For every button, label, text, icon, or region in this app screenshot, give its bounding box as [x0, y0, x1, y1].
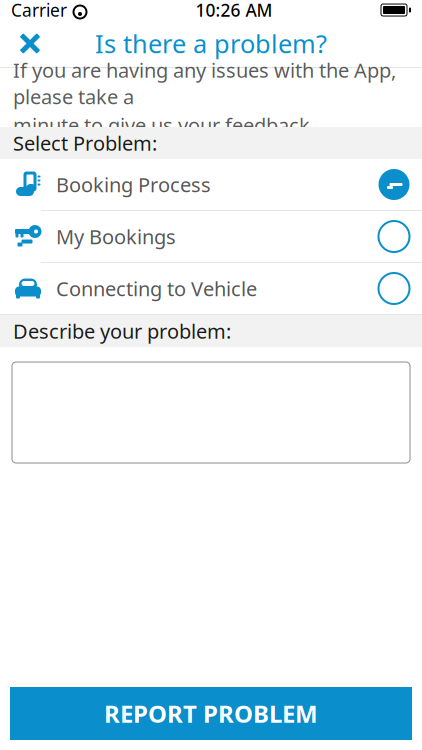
staticText: minute to give us your feedback.: [13, 112, 315, 138]
button[interactable]: REPORT PROBLEM: [10, 687, 412, 740]
staticText: Carrier: [11, 0, 67, 21]
staticText: Booking Process: [56, 171, 211, 198]
button[interactable]: My Bookings: [0, 211, 422, 262]
button[interactable]: Close: [8, 21, 52, 65]
staticText: Is there a problem?: [95, 27, 327, 60]
staticText: My Bookings: [56, 223, 176, 250]
button[interactable]: Booking Process: [0, 159, 422, 210]
staticText: Select Problem:: [13, 130, 157, 156]
button[interactable]: Describe your problem: [12, 362, 410, 463]
staticText: REPORT PROBLEM: [104, 698, 318, 729]
button[interactable]: Connecting to Vehicle: [0, 263, 422, 314]
staticText: Connecting to Vehicle: [56, 275, 257, 302]
staticText: Describe your problem:: [13, 318, 231, 344]
staticText: 10:26 AM: [195, 0, 272, 21]
staticText: If you are having any issues with the Ap…: [13, 57, 396, 110]
